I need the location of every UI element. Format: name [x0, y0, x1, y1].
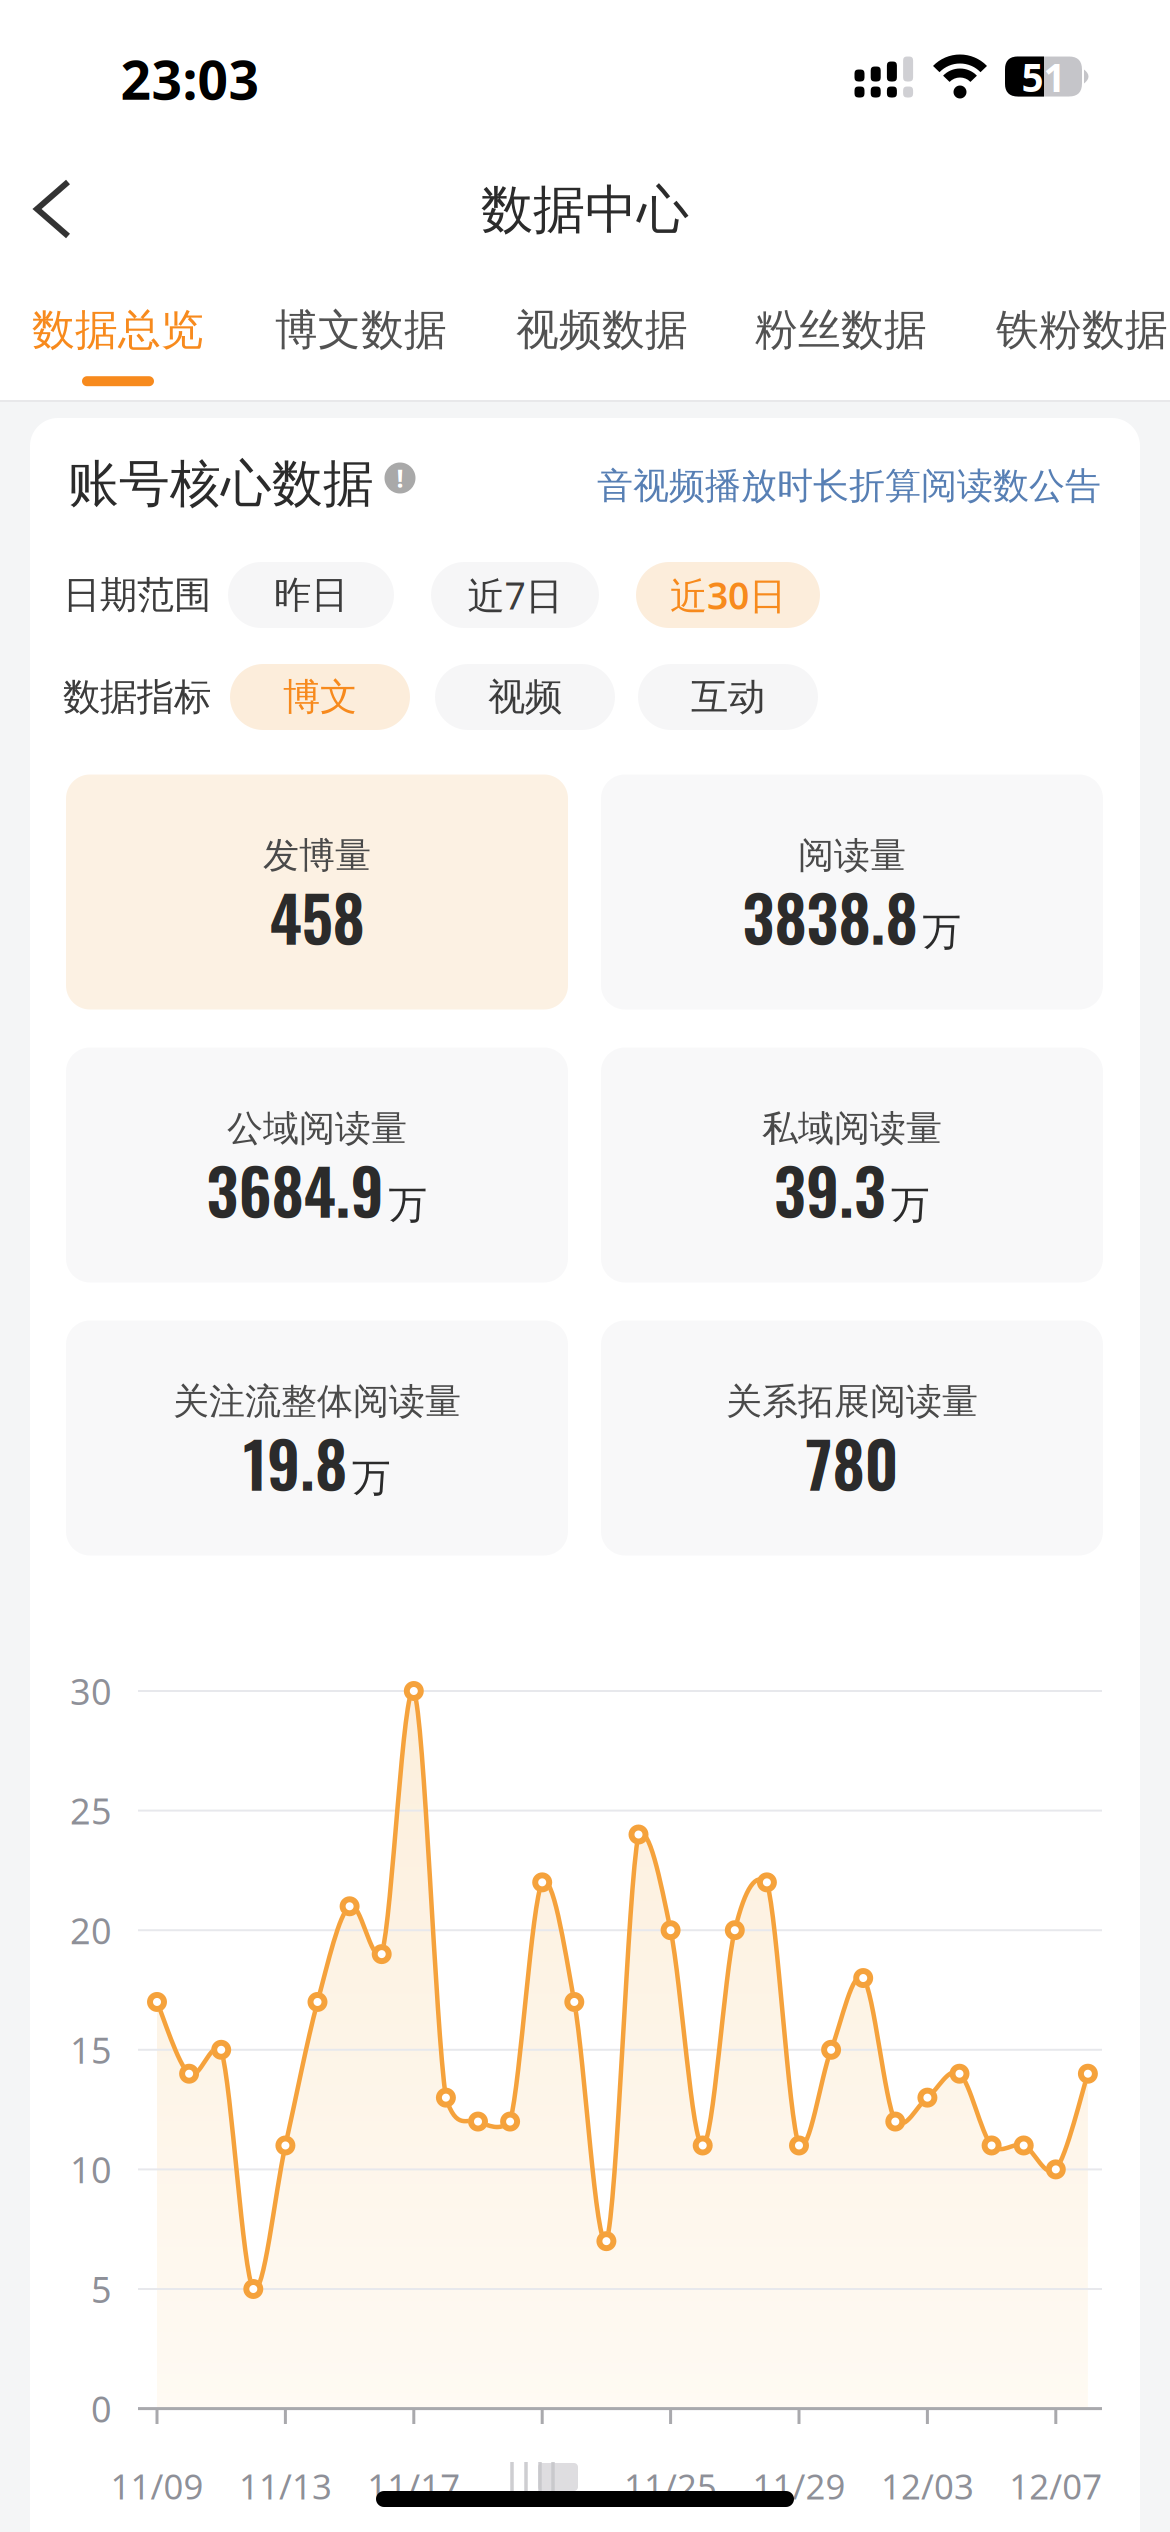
staticText: 互动 — [691, 674, 765, 720]
staticText: 780 — [805, 1416, 898, 1509]
button[interactable]: 铁粉数据 — [996, 304, 1168, 356]
staticText: 博文数据 — [275, 304, 447, 356]
staticText: 音视频播放时长折算阅读数公告 — [597, 464, 1101, 508]
button[interactable]: 博文数据 — [275, 304, 447, 356]
button[interactable]: Info — [384, 462, 415, 493]
staticText: 万 — [922, 908, 961, 956]
staticText: 关系拓展阅读量 — [726, 1379, 978, 1424]
button[interactable]: 视频数据 — [516, 304, 688, 356]
staticText: 粉丝数据 — [755, 304, 927, 356]
staticText: 5 — [91, 2265, 112, 2313]
staticText: 3838.8 — [742, 870, 917, 963]
staticText: 11/13 — [239, 2463, 332, 2509]
staticText: 51 — [1021, 51, 1065, 103]
staticText: 账号核心数据 — [68, 453, 374, 515]
button[interactable]: 数据总览 — [32, 304, 204, 386]
staticText: 11/29 — [752, 2463, 845, 2509]
button[interactable]: 粉丝数据 — [755, 304, 927, 356]
staticText: 万 — [388, 1181, 427, 1229]
button[interactable]: 博文 — [230, 664, 410, 730]
staticText: 发博量 — [263, 833, 371, 878]
staticText: 昨日 — [274, 572, 348, 618]
staticText: 近7日 — [467, 570, 562, 620]
staticText: 阅读量 — [798, 833, 906, 878]
button[interactable]: 近7日 — [431, 562, 599, 628]
staticText: 日期范围 — [63, 572, 211, 618]
staticText: 11/17 — [367, 2463, 460, 2509]
staticText: 25 — [70, 1787, 112, 1834]
staticText: 20 — [70, 1906, 112, 1954]
staticText: 458 — [269, 870, 364, 963]
staticText: 12/07 — [1009, 2463, 1102, 2509]
staticText: 11/25 — [624, 2463, 717, 2509]
staticText: 数据中心 — [481, 178, 689, 242]
staticText: 0 — [91, 2385, 112, 2432]
staticText: 公域阅读量 — [227, 1106, 407, 1151]
staticText: 3684.9 — [206, 1143, 383, 1236]
staticText: 12/03 — [881, 2463, 974, 2509]
staticText: 30 — [70, 1667, 112, 1715]
button[interactable]: 近30日 — [636, 562, 820, 628]
button[interactable]: 昨日 — [228, 562, 394, 628]
staticText: 视频数据 — [516, 304, 688, 356]
staticText: 19.8 — [243, 1416, 347, 1509]
staticText: 近30日 — [670, 570, 786, 620]
staticText: 数据总览 — [32, 304, 204, 356]
button[interactable]: 音视频播放时长折算阅读数公告 — [597, 464, 1101, 508]
staticText: 关注流整体阅读量 — [173, 1379, 461, 1424]
staticText: 铁粉数据 — [996, 304, 1168, 356]
staticText: 视频 — [488, 674, 562, 720]
staticText: 11/09 — [110, 2463, 203, 2509]
staticText: 万 — [352, 1454, 391, 1502]
staticText: 数据指标 — [63, 674, 211, 720]
staticText: 万 — [891, 1181, 930, 1229]
staticText: 39.3 — [774, 1143, 886, 1236]
button[interactable]: 视频 — [435, 664, 615, 730]
staticText: 10 — [70, 2145, 112, 2193]
button[interactable]: Back — [34, 179, 72, 239]
staticText: 私域阅读量 — [762, 1106, 942, 1151]
button[interactable]: 互动 — [638, 664, 818, 730]
staticText: 博文 — [283, 674, 357, 720]
staticText: ! — [396, 461, 403, 495]
staticText: 23:03 — [120, 44, 259, 114]
staticText: 15 — [70, 2026, 112, 2074]
